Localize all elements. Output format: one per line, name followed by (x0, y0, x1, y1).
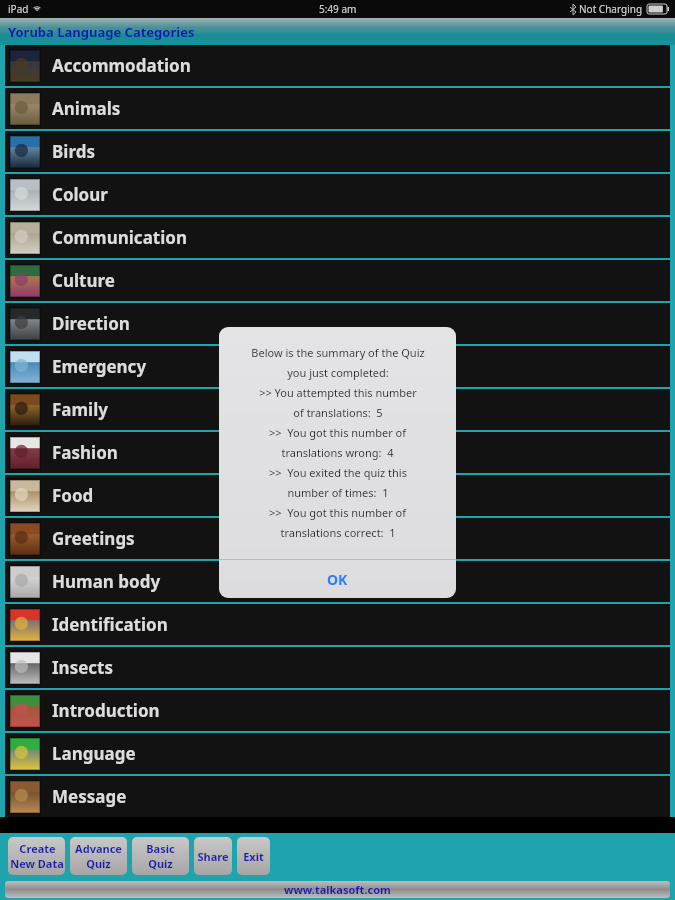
staticText: Communication (52, 226, 187, 249)
staticText: OK (327, 570, 348, 589)
staticText: Emergency (52, 355, 147, 378)
button[interactable]: Culture (5, 260, 670, 301)
staticText: you just completed: (287, 365, 389, 380)
staticText: Culture (52, 269, 115, 292)
button[interactable]: Identification (5, 604, 670, 645)
staticText: Quiz (148, 856, 173, 871)
button[interactable]: OK (219, 560, 456, 598)
staticText: translations correct: 1 (280, 525, 396, 540)
staticText: Quiz (86, 856, 111, 871)
staticText: Animals (52, 97, 121, 120)
staticText: Share (197, 849, 229, 864)
button[interactable]: Insects (5, 647, 670, 688)
staticText: Colour (52, 183, 108, 206)
button[interactable]: Food (5, 475, 670, 516)
staticText: >> You got this number of (269, 425, 406, 440)
staticText: Yoruba Language Categories (8, 23, 195, 41)
staticText: Basic (146, 841, 175, 856)
button[interactable]: Birds (5, 131, 670, 172)
staticText: Advance (75, 841, 122, 856)
button[interactable]: Colour (5, 174, 670, 215)
staticText: Below is the summary of the Quiz (251, 345, 425, 360)
staticText: iPad (8, 2, 29, 16)
staticText: Birds (52, 140, 95, 163)
button[interactable]: Animals (5, 88, 670, 129)
staticText: Message (52, 785, 127, 808)
button[interactable]: Accommodation (5, 45, 670, 86)
button[interactable]: Introduction (5, 690, 670, 731)
staticText: Language (52, 742, 136, 765)
staticText: www.talkasoft.com (284, 882, 391, 897)
button[interactable]: Greetings (5, 518, 670, 559)
staticText: Accommodation (52, 54, 191, 77)
staticText: Direction (52, 312, 130, 335)
staticText: Insects (52, 656, 114, 679)
button[interactable]: Human body (5, 561, 670, 602)
button[interactable]: Fashion (5, 432, 670, 473)
staticText: 5:49 am (319, 2, 357, 16)
button[interactable]: www.talkasoft.com (5, 881, 670, 898)
staticText: New Data (10, 856, 64, 871)
button[interactable]: Basic (132, 837, 189, 875)
staticText: translations wrong: 4 (281, 445, 394, 460)
button[interactable]: Advance (70, 837, 127, 875)
staticText: >> You exited the quiz this (269, 465, 407, 480)
button[interactable]: Exit (237, 837, 270, 875)
staticText: number of times: 1 (287, 485, 389, 500)
button[interactable]: Family (5, 389, 670, 430)
button[interactable]: Share (194, 837, 232, 875)
button[interactable]: Direction (5, 303, 670, 344)
staticText: Exit (243, 849, 264, 864)
staticText: Greetings (52, 527, 135, 550)
button[interactable]: Create (8, 837, 65, 875)
staticText: Fashion (52, 441, 118, 464)
staticText: Human body (52, 570, 161, 593)
staticText: of translations: 5 (293, 405, 383, 420)
staticText: Introduction (52, 699, 160, 722)
staticText: >> You got this number of (269, 505, 406, 520)
button[interactable]: Emergency (5, 346, 670, 387)
staticText: Identification (52, 613, 168, 636)
staticText: Not Charging (579, 2, 643, 16)
staticText: >> You attempted this number (259, 385, 417, 400)
button[interactable]: Language (5, 733, 670, 774)
staticText: Create (19, 841, 56, 856)
staticText: Food (52, 484, 94, 507)
staticText: Family (52, 398, 108, 421)
button[interactable]: Message (5, 776, 670, 817)
button[interactable]: Communication (5, 217, 670, 258)
